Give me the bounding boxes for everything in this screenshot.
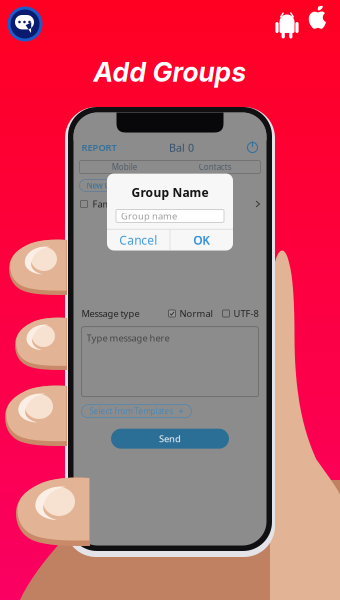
- staticText: Cancel: [119, 232, 157, 248]
- staticText: Mobile: [112, 162, 138, 172]
- staticText: New Group: [86, 180, 128, 191]
- button[interactable]: Log out: [246, 141, 258, 153]
- staticText: Type message here: [86, 332, 169, 344]
- button[interactable]: Cancel: [107, 229, 170, 250]
- button[interactable]: Send: [111, 429, 229, 449]
- button[interactable]: Mobile: [79, 160, 170, 173]
- staticText: Family: [92, 198, 120, 210]
- staticText: REPORT: [81, 141, 116, 154]
- staticText: Bal 0: [169, 140, 194, 155]
- staticText: Select from Templates: [89, 406, 173, 416]
- staticText: OK: [193, 232, 210, 248]
- staticText: Send: [159, 432, 181, 445]
- button[interactable]: Contacts: [170, 160, 260, 173]
- staticText: Group Name: [131, 184, 208, 200]
- staticText: Contacts: [199, 162, 232, 172]
- button[interactable]: Normal: [168, 307, 212, 320]
- button[interactable]: Family: [73, 197, 266, 210]
- staticText: UTF-8: [233, 307, 258, 320]
- button[interactable]: App Store: [308, 6, 327, 29]
- staticText: Add Groups: [93, 56, 246, 88]
- button[interactable]: UTF-8: [222, 307, 258, 320]
- staticText: Message type: [81, 307, 139, 320]
- button[interactable]: REPORT: [81, 141, 116, 154]
- button[interactable]: OK: [170, 229, 233, 250]
- staticText: Group name: [121, 210, 177, 222]
- staticText: Normal: [179, 307, 212, 320]
- button[interactable]: Select from Templates: [81, 405, 191, 418]
- button[interactable]: New Group: [79, 179, 135, 191]
